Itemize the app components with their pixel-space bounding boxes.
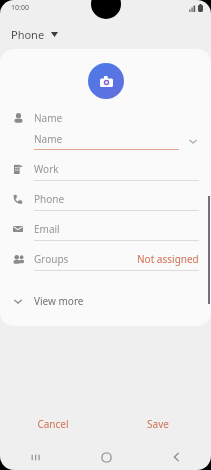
staticText: View more: [34, 294, 84, 308]
staticText: Groups: [34, 252, 69, 266]
staticText: Name: [34, 132, 63, 146]
button[interactable]: Home: [71, 444, 141, 470]
button[interactable]: Cancel: [0, 410, 105, 438]
button[interactable]: Phone: [0, 192, 211, 222]
staticText: Not assigned: [137, 252, 199, 266]
button[interactable]: Recent apps: [0, 444, 71, 470]
staticText: Work: [34, 162, 59, 176]
button[interactable]: Name: [0, 132, 211, 150]
button[interactable]: Work: [0, 162, 211, 192]
staticText: Save: [147, 417, 169, 431]
staticText: Email: [34, 222, 60, 236]
staticText: Name: [34, 111, 63, 125]
staticText: 10:00: [11, 3, 29, 13]
button[interactable]: Groups: [0, 252, 211, 282]
button[interactable]: View more: [0, 290, 211, 312]
button[interactable]: Email: [0, 222, 211, 252]
other: Expand name: [187, 135, 199, 147]
button[interactable]: Name: [0, 109, 211, 127]
button[interactable]: Phone: [9, 24, 60, 45]
button[interactable]: Back: [141, 444, 211, 470]
staticText: Phone: [11, 27, 45, 42]
button[interactable]: Save: [105, 410, 211, 438]
button[interactable]: Add photo: [88, 63, 124, 99]
staticText: Phone: [34, 192, 65, 206]
staticText: Cancel: [37, 417, 69, 431]
